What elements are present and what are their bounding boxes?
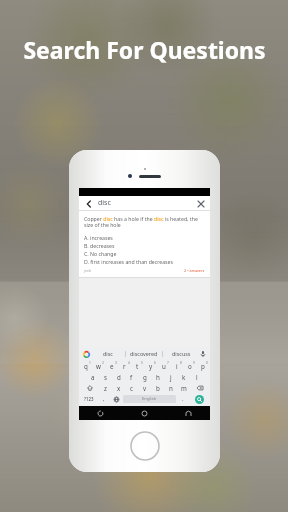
staticText: 4 (128, 361, 130, 365)
button[interactable]: Back (79, 406, 122, 420)
button[interactable]: ?123 (80, 393, 97, 405)
button[interactable]: Back (79, 196, 210, 210)
staticText: r (123, 362, 126, 370)
button[interactable]: g (138, 371, 151, 382)
staticText: 6 (154, 361, 156, 365)
staticText: jeeb (84, 268, 92, 273)
staticText: u (162, 362, 166, 370)
staticText: y (149, 362, 153, 370)
button[interactable]: Backspace (190, 382, 209, 393)
button[interactable]: f (125, 371, 138, 382)
button[interactable]: Voice input (199, 350, 207, 358)
button[interactable]: Language (110, 393, 123, 405)
button[interactable]: j (164, 371, 177, 382)
staticText: 1 (89, 361, 91, 365)
button[interactable]: Shift (80, 382, 99, 393)
staticText: d (117, 373, 121, 381)
staticText: discovered (130, 350, 158, 357)
staticText: D. first increases and than decreases (84, 258, 174, 265)
button[interactable]: n (164, 382, 177, 393)
staticText: v (143, 384, 147, 392)
button[interactable]: e (105, 360, 118, 371)
staticText: disc (98, 198, 111, 208)
staticText: 9 (193, 361, 195, 365)
button[interactable]: l (190, 371, 203, 382)
button[interactable]: discuss (163, 347, 199, 360)
button[interactable]: Clear (196, 199, 205, 208)
button[interactable]: q (80, 360, 92, 371)
staticText: z (104, 384, 107, 392)
staticText: b (156, 384, 160, 392)
button[interactable]: r (118, 360, 131, 371)
staticText: j (170, 373, 172, 381)
staticText: f (130, 373, 133, 381)
button[interactable]: x (112, 382, 125, 393)
staticText: 3 (115, 361, 117, 365)
staticText: 2 (102, 361, 104, 365)
staticText: s (104, 373, 107, 381)
button[interactable]: Search (195, 395, 204, 404)
button[interactable]: t (131, 360, 144, 371)
staticText: m (181, 384, 187, 392)
button[interactable]: i (170, 360, 183, 371)
staticText: C. No change (84, 250, 117, 257)
staticText: 2 • answers (184, 268, 205, 273)
button[interactable]: English (123, 395, 176, 403)
button[interactable]: k (177, 371, 190, 382)
staticText: l (196, 373, 198, 381)
button[interactable]: a (86, 371, 99, 382)
staticText: 7 (167, 361, 169, 365)
staticText: i (176, 362, 178, 370)
button[interactable]: Back (84, 199, 93, 208)
button[interactable]: Google (82, 350, 90, 358)
staticText: q (84, 362, 88, 370)
staticText: A. increases (84, 234, 113, 241)
staticText: x (117, 384, 121, 392)
button[interactable]: disc (90, 347, 125, 360)
staticText: w (96, 362, 101, 370)
button[interactable]: Copper disc has a hole if the disc is he… (79, 211, 210, 277)
button[interactable]: discovered (126, 347, 162, 360)
button[interactable]: Recents (166, 406, 210, 420)
staticText: 0 (206, 361, 208, 365)
staticText: o (188, 362, 192, 370)
staticText: a (91, 373, 95, 381)
staticText: n (169, 384, 173, 392)
staticText: English (142, 396, 157, 402)
staticText: , (103, 395, 105, 403)
staticText: discuss (172, 350, 191, 357)
staticText: 5 (141, 361, 143, 365)
staticText: B. decreases (84, 242, 115, 249)
staticText: p (201, 362, 205, 370)
button[interactable]: b (151, 382, 164, 393)
button[interactable]: c (125, 382, 138, 393)
staticText: disc (103, 350, 113, 357)
staticText: t (136, 362, 139, 370)
staticText: e (110, 362, 114, 370)
button[interactable]: z (99, 382, 112, 393)
staticText: . (182, 395, 184, 403)
button[interactable]: u (157, 360, 170, 371)
staticText: k (182, 373, 186, 381)
button[interactable]: w (92, 360, 105, 371)
button[interactable]: Home (122, 406, 166, 420)
staticText: Search For Questions (23, 34, 266, 65)
button[interactable]: m (177, 382, 190, 393)
button[interactable]: . (176, 393, 189, 405)
button[interactable]: , (97, 393, 110, 405)
staticText: Copper disc has a hole if the disc is he… (84, 215, 205, 229)
staticText: c (130, 384, 133, 392)
staticText: g (143, 373, 147, 381)
button[interactable]: p (196, 360, 209, 371)
button[interactable]: h (151, 371, 164, 382)
staticText: h (156, 373, 160, 381)
staticText: ?123 (84, 396, 94, 402)
button[interactable]: d (112, 371, 125, 382)
button[interactable]: y (144, 360, 157, 371)
button[interactable]: s (99, 371, 112, 382)
staticText: 8 (180, 361, 182, 365)
button[interactable]: v (138, 382, 151, 393)
button[interactable]: o (183, 360, 196, 371)
